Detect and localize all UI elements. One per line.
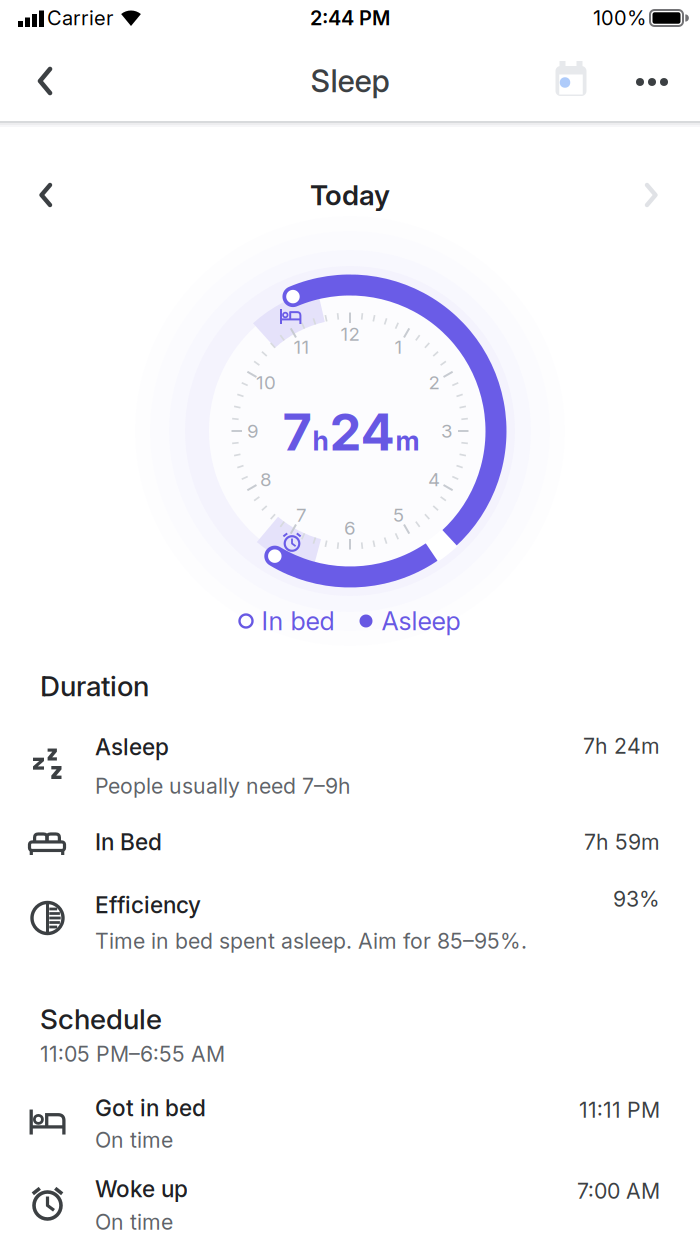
button[interactable]: Next day	[645, 184, 659, 208]
staticText: 7h 59m	[584, 829, 660, 855]
staticText: 12	[340, 323, 359, 345]
staticText: 7	[296, 504, 307, 526]
staticText: 11	[293, 336, 309, 358]
staticText: Time in bed spent asleep. Aim for 85–95%…	[95, 928, 527, 954]
staticText: 6	[344, 517, 356, 539]
staticText: 8	[260, 468, 272, 490]
staticText: 7h 24m	[583, 733, 660, 759]
staticText: Schedule	[40, 1002, 162, 1035]
staticText: Got in bed	[95, 1095, 206, 1121]
button[interactable]: More options	[635, 70, 669, 94]
staticText: 11:11 PM	[579, 1097, 660, 1123]
button[interactable]: Calendar	[554, 61, 588, 99]
staticText: On time	[95, 1209, 173, 1235]
staticText: 93%	[613, 886, 660, 912]
staticText: 1	[394, 336, 402, 358]
staticText: 3	[441, 420, 453, 442]
staticText: 100%	[593, 6, 646, 30]
staticText: 24	[329, 402, 394, 462]
staticText: In bed	[261, 606, 334, 636]
staticText: In Bed	[95, 829, 162, 855]
staticText: 2	[428, 371, 439, 393]
staticText: 4	[428, 468, 440, 490]
staticText: 7	[282, 402, 311, 462]
staticText: 5	[393, 504, 404, 526]
staticText: 11:05 PM–6:55 AM	[40, 1041, 225, 1067]
staticText: 2:44 PM	[310, 6, 390, 30]
staticText: h	[312, 425, 328, 456]
staticText: Efficiency	[95, 892, 201, 918]
staticText: On time	[95, 1127, 173, 1153]
button[interactable]: Previous day	[40, 184, 54, 208]
staticText: People usually need 7–9h	[95, 773, 351, 799]
staticText: Woke up	[95, 1176, 188, 1202]
staticText: Asleep	[95, 734, 169, 760]
staticText: Asleep	[381, 606, 460, 636]
staticText: m	[395, 425, 419, 456]
button[interactable]: Back	[38, 68, 58, 96]
staticText: 9	[247, 420, 259, 442]
staticText: Duration	[40, 669, 149, 702]
staticText: Today	[310, 178, 390, 211]
staticText: 7:00 AM	[577, 1178, 660, 1204]
staticText: Sleep	[310, 63, 389, 99]
staticText: 10	[256, 371, 276, 393]
staticText: Carrier	[47, 6, 113, 30]
